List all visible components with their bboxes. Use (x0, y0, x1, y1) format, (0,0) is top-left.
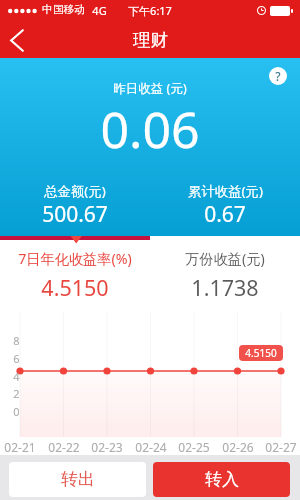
button[interactable]: Help (266, 64, 290, 88)
staticText: 02-21 (4, 439, 36, 455)
staticText: 转入 (205, 469, 239, 490)
staticText: 4 (13, 369, 20, 383)
staticText: 转出 (61, 469, 95, 490)
staticText: 下午6:17 (128, 3, 172, 18)
staticText: 02-22 (48, 439, 80, 455)
staticText: 7日年化收益率(%) (18, 249, 132, 268)
staticText: 累计收益(元) (188, 182, 263, 200)
staticText: 4.5150 (41, 273, 109, 302)
staticText: ? (275, 68, 281, 84)
staticText: 02-26 (222, 439, 254, 455)
button[interactable]: 7日年化收益率(%) (0, 246, 150, 305)
staticText: 4.5150 (245, 346, 277, 360)
staticText: 6 (13, 351, 20, 365)
staticText: 理财 (133, 29, 168, 51)
staticText: 0.67 (204, 200, 246, 229)
staticText: 8 (13, 333, 20, 347)
staticText: 02-24 (135, 439, 167, 455)
staticText: 2 (13, 386, 20, 400)
staticText: 0.06 (100, 95, 200, 163)
button[interactable]: Back (0, 22, 36, 58)
staticText: 1.1738 (191, 273, 259, 302)
staticText: 昨日收益 (元) (113, 80, 187, 97)
button[interactable]: 转入 (153, 462, 290, 497)
staticText: 中国移动 (42, 3, 85, 16)
staticText: 0 (13, 404, 20, 418)
staticText: 02-25 (178, 439, 210, 455)
staticText: 4G (92, 3, 107, 18)
button[interactable]: 万份收益(元) (150, 246, 300, 305)
staticText: 02-23 (91, 439, 123, 455)
button[interactable]: 转出 (9, 462, 146, 497)
staticText: 500.67 (42, 200, 108, 229)
staticText: 总金额(元) (44, 182, 106, 200)
staticText: 02-27 (265, 439, 297, 455)
staticText: 万份收益(元) (185, 249, 265, 268)
